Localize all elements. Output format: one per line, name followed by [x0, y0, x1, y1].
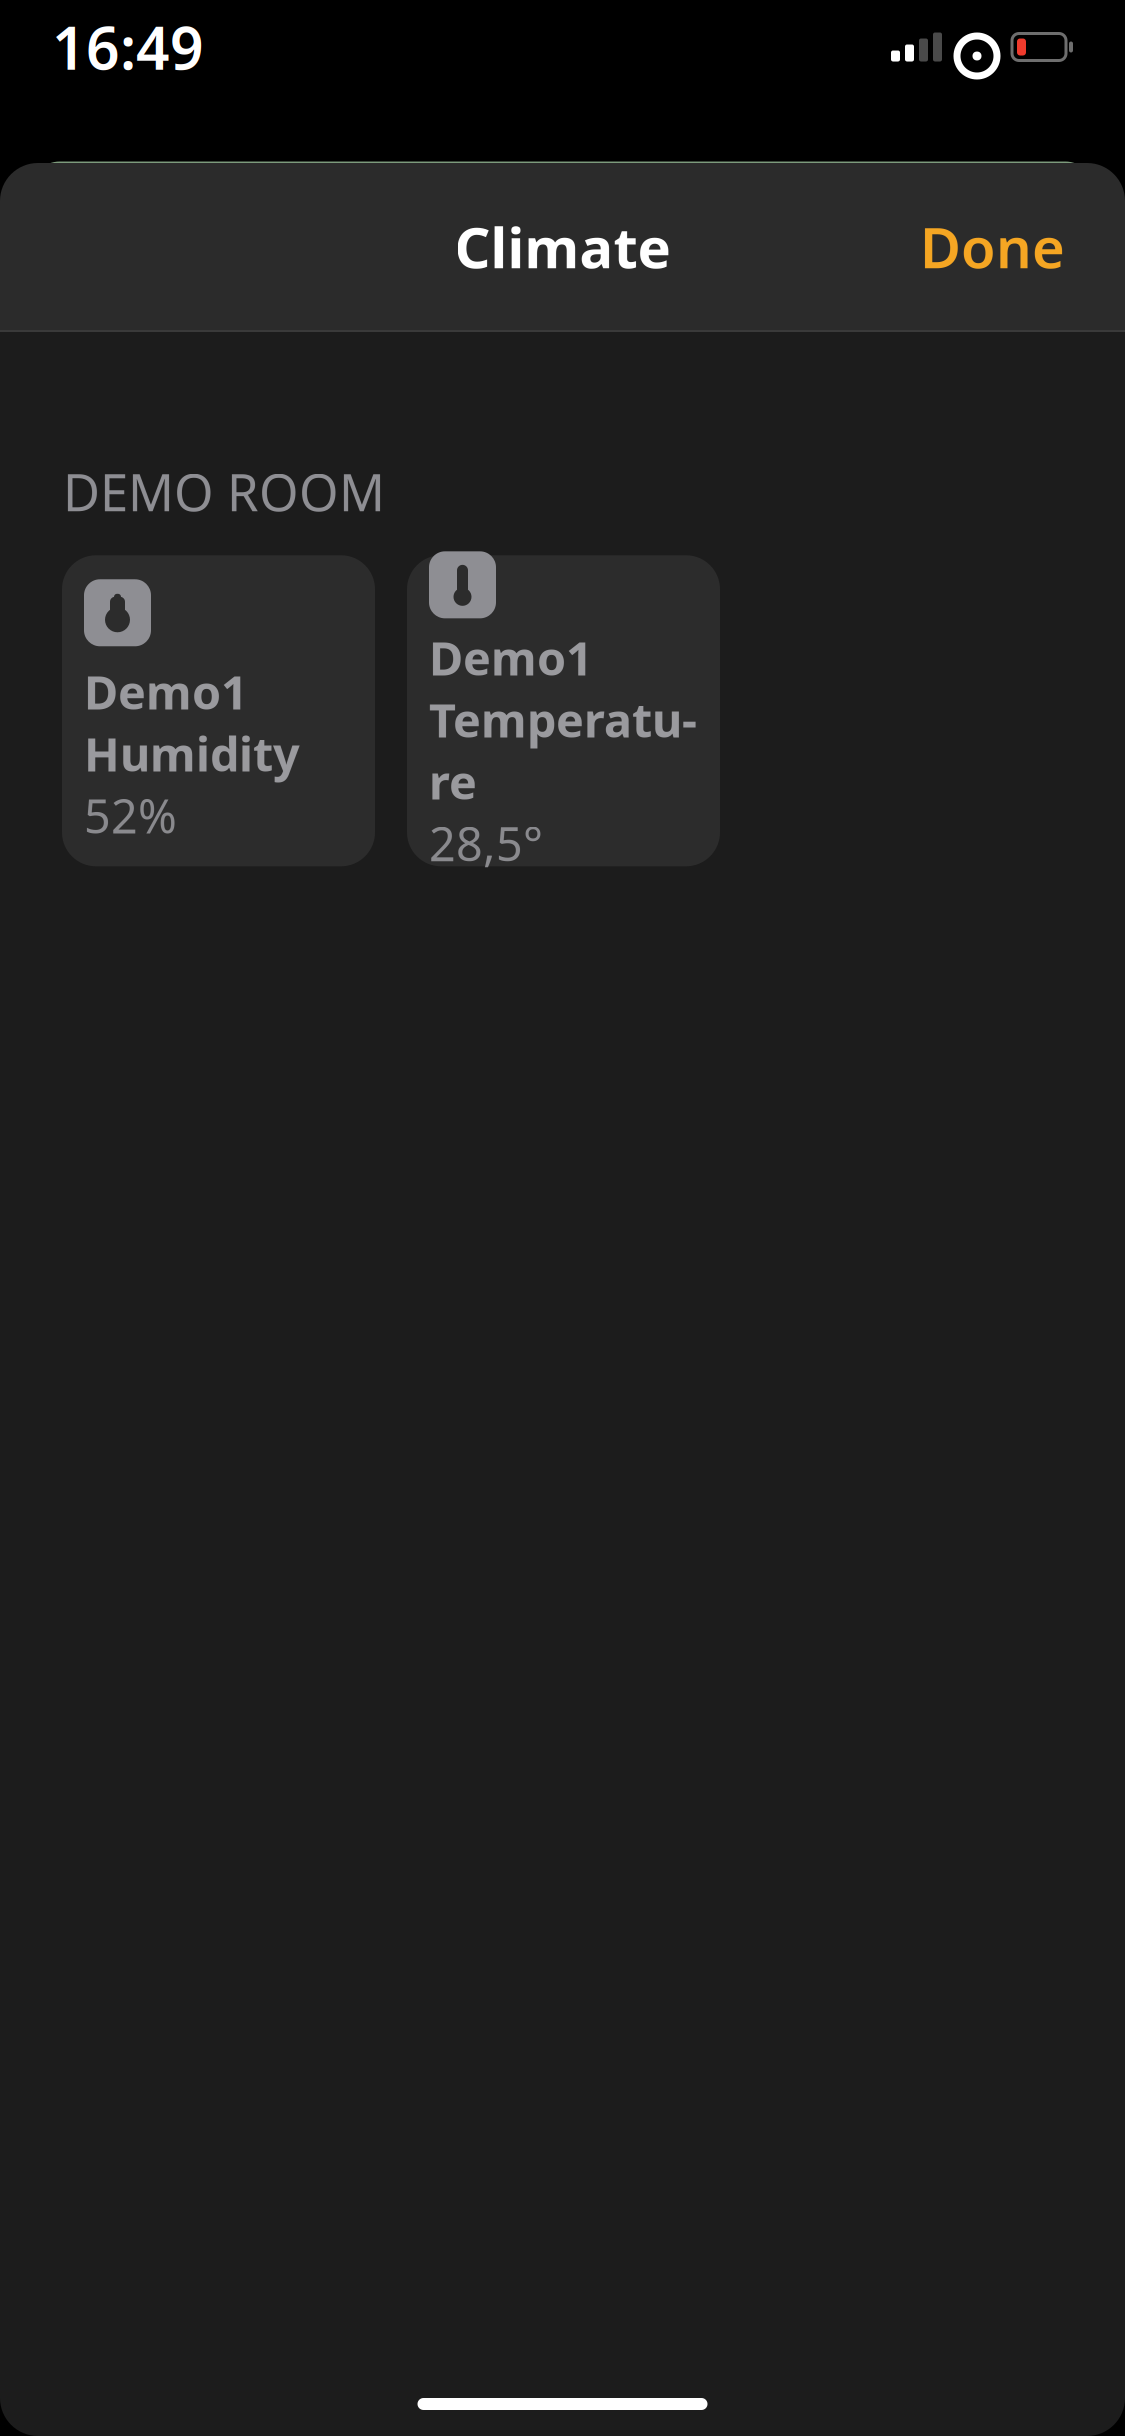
- button[interactable]: Done: [902, 195, 1083, 298]
- staticText: Temperature: [429, 688, 697, 812]
- staticText: DEMO ROOM: [63, 458, 385, 525]
- staticText: Humidity: [84, 722, 300, 784]
- staticText: 52%: [84, 784, 177, 846]
- staticText: Demo1: [429, 626, 593, 688]
- staticText: 28,5°: [429, 812, 543, 874]
- staticText: 16:49: [52, 8, 204, 86]
- staticText: Done: [920, 209, 1065, 284]
- button[interactable]: Demo1: [407, 555, 720, 866]
- button[interactable]: Demo1: [62, 555, 375, 866]
- staticText: Climate: [454, 209, 670, 284]
- staticText: Demo1: [84, 660, 248, 722]
